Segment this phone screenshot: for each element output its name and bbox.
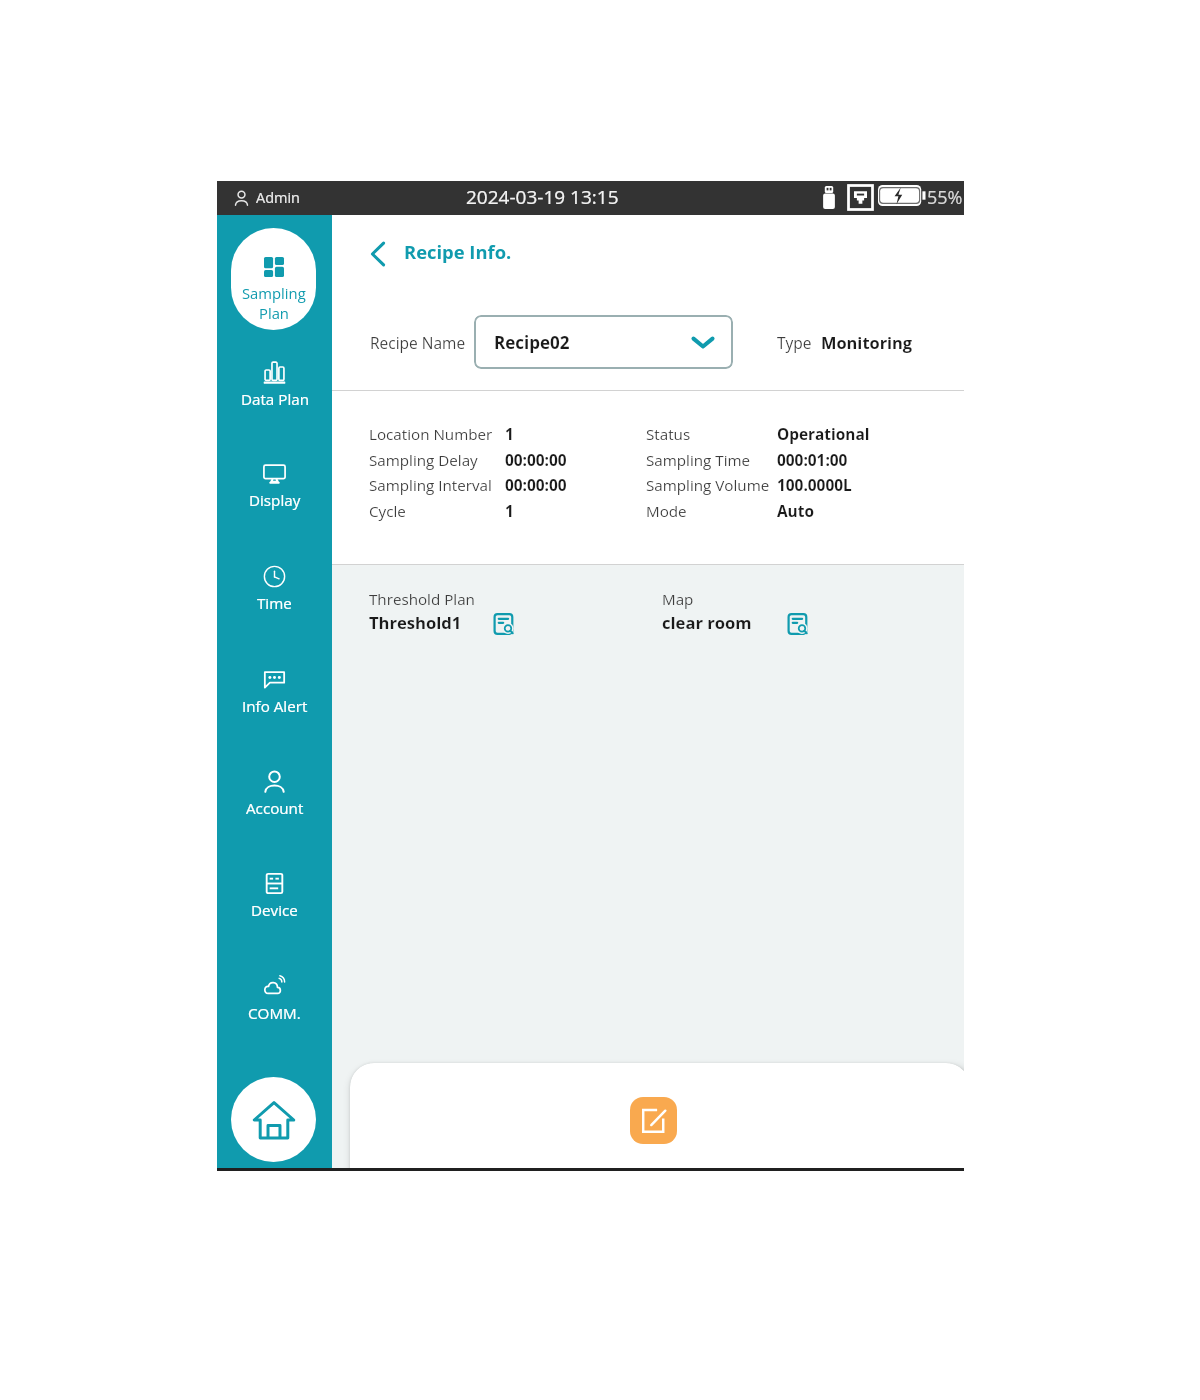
staticText: 000:01:00 [777, 450, 848, 471]
staticText: Device [251, 900, 298, 921]
staticText: Recipe02 [494, 331, 570, 354]
staticText: Operational [777, 424, 870, 445]
staticText: Auto [777, 501, 814, 522]
staticText: Monitoring [821, 331, 913, 353]
staticText: Recipe Name [370, 332, 466, 353]
staticText: Map [662, 589, 694, 610]
staticText: 55% [927, 185, 963, 210]
staticText: Sampling Time [646, 450, 751, 471]
button[interactable]: COMM. [217, 966, 332, 1030]
staticText: Sampling Volume [646, 475, 770, 496]
staticText: 2024-03-19 13:15 [466, 184, 619, 210]
staticText: Sampling [242, 283, 306, 303]
button[interactable]: Account [217, 761, 332, 825]
staticText: Mode [646, 501, 687, 522]
staticText: Type [777, 332, 812, 353]
staticText: Threshold1 [369, 611, 462, 634]
button[interactable]: Sampling [231, 228, 316, 330]
button[interactable]: View map [786, 611, 812, 637]
button[interactable]: Display [217, 453, 332, 517]
button[interactable]: View threshold plan [492, 611, 518, 637]
button[interactable]: Data Plan [217, 352, 332, 416]
staticText: Recipe Info. [404, 239, 512, 264]
staticText: Location Number [369, 424, 493, 445]
staticText: 00:00:00 [505, 450, 567, 471]
staticText: Status [646, 424, 691, 445]
staticText: Sampling Delay [369, 450, 478, 471]
staticText: Account [246, 798, 304, 819]
staticText: 1 [505, 501, 514, 522]
staticText: 00:00:00 [505, 475, 567, 496]
staticText: Display [249, 490, 301, 511]
button[interactable]: Device [217, 863, 332, 927]
button[interactable]: Recipe Info. [368, 230, 512, 272]
staticText: Info Alert [242, 696, 308, 717]
button[interactable]: Home [231, 1077, 316, 1162]
staticText: COMM. [248, 1003, 301, 1024]
button[interactable]: Time [217, 556, 332, 620]
staticText: Threshold Plan [369, 589, 475, 610]
staticText: Sampling Interval [369, 475, 492, 496]
staticText: 1 [505, 424, 514, 445]
staticText: clear room [662, 611, 752, 634]
staticText: Plan [259, 303, 289, 323]
button[interactable]: Edit [630, 1097, 677, 1144]
staticText: Data Plan [241, 389, 309, 410]
staticText: Cycle [369, 501, 406, 522]
staticText: Time [257, 593, 292, 614]
button[interactable]: Info Alert [217, 659, 332, 723]
staticText: 100.0000L [777, 475, 852, 496]
staticText: Admin [256, 188, 301, 208]
button[interactable]: Recipe02 [474, 315, 733, 369]
